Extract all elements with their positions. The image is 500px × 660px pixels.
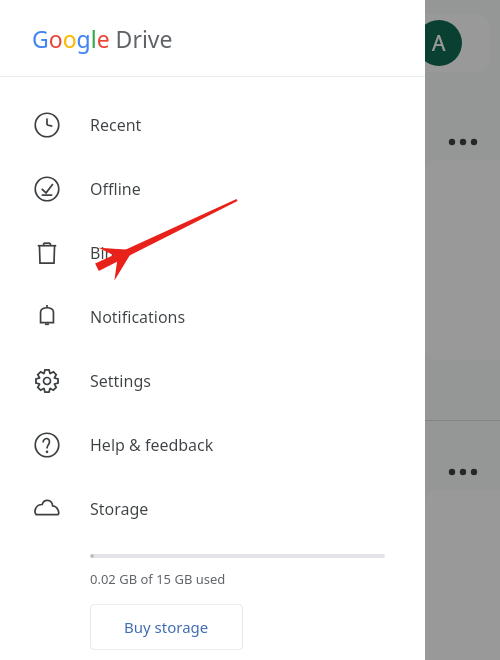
button[interactable]: Bin [0, 221, 425, 285]
button[interactable]: Buy storage [90, 604, 243, 650]
staticText: Buy storage [124, 617, 209, 637]
staticText: Bin [90, 242, 115, 264]
staticText: Settings [90, 370, 151, 392]
staticText: Help & feedback [90, 434, 214, 456]
button[interactable]: Storage [0, 477, 425, 541]
staticText: A [432, 29, 446, 58]
staticText: Recent [90, 114, 142, 136]
staticText: Storage [90, 498, 149, 520]
staticText: Offline [90, 178, 141, 200]
button[interactable]: Offline [0, 157, 425, 221]
button[interactable]: Recent [0, 93, 425, 157]
staticText: 0.02 GB of 15 GB used [90, 570, 226, 588]
staticText: Notifications [90, 306, 186, 328]
button[interactable]: Help & feedback [0, 413, 425, 477]
staticText: Google Drive [32, 23, 173, 54]
button[interactable]: Settings [0, 349, 425, 413]
button[interactable]: Notifications [0, 285, 425, 349]
button[interactable]: More options [448, 462, 488, 482]
button[interactable]: More options [448, 132, 488, 152]
